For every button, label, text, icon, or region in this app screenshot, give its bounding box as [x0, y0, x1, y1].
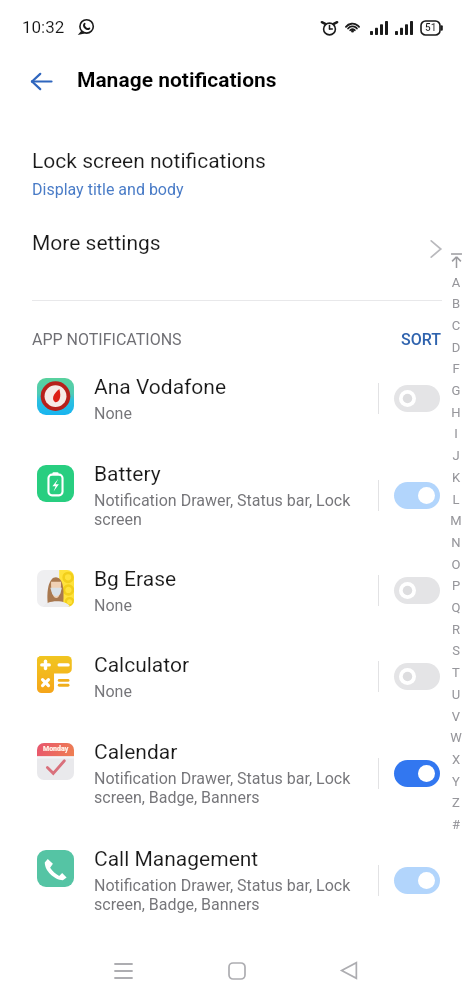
- staticText: Z: [444, 795, 468, 810]
- button[interactable]: Toggle notifications: [394, 760, 440, 787]
- staticText: Bg Erase: [94, 567, 177, 592]
- staticText: N: [444, 535, 468, 550]
- staticText: O: [444, 557, 468, 572]
- staticText: None: [94, 596, 132, 615]
- staticText: None: [94, 404, 132, 423]
- staticText: H: [444, 405, 468, 420]
- staticText: U: [444, 687, 468, 702]
- button[interactable]: Back: [320, 942, 377, 999]
- staticText: A: [444, 275, 468, 290]
- staticText: screen: [94, 510, 142, 529]
- staticText: G: [444, 383, 468, 398]
- staticText: APP NOTIFICATIONS: [32, 330, 182, 349]
- button[interactable]: Toggle notifications: [394, 663, 440, 690]
- button[interactable]: Alphabet index: [445, 250, 469, 840]
- staticText: 51: [425, 22, 437, 34]
- staticText: J: [444, 448, 468, 463]
- button[interactable]: Ana Vodafone: [0, 366, 473, 432]
- button[interactable]: Bg Erase: [0, 558, 473, 624]
- button[interactable]: Monday: [0, 731, 473, 817]
- staticText: screen, Badge, Banners: [94, 788, 260, 807]
- button[interactable]: Calculator: [0, 644, 473, 710]
- staticText: Monday: [43, 745, 69, 753]
- staticText: Lock screen notifications: [32, 149, 266, 174]
- button[interactable]: Back: [21, 61, 61, 101]
- staticText: T: [444, 665, 468, 680]
- staticText: V: [444, 709, 468, 724]
- staticText: W: [444, 730, 468, 745]
- staticText: K: [444, 470, 468, 485]
- staticText: Notification Drawer, Status bar, Lock: [94, 876, 351, 895]
- staticText: D: [444, 340, 468, 355]
- staticText: Calendar: [94, 740, 178, 765]
- button[interactable]: Lock screen notifications: [0, 145, 473, 207]
- staticText: Display title and body: [32, 180, 184, 199]
- staticText: C: [444, 318, 468, 333]
- button[interactable]: Toggle notifications: [394, 482, 440, 509]
- staticText: P: [444, 578, 468, 593]
- staticText: Call Management: [94, 847, 259, 872]
- button[interactable]: Call Management: [0, 838, 473, 924]
- button[interactable]: More settings: [0, 221, 473, 266]
- button[interactable]: Toggle notifications: [394, 867, 440, 894]
- button[interactable]: Recent apps: [95, 942, 152, 999]
- staticText: None: [94, 682, 132, 701]
- staticText: Notification Drawer, Status bar, Lock: [94, 491, 351, 510]
- staticText: Battery: [94, 462, 161, 487]
- staticText: I: [444, 426, 468, 441]
- staticText: L: [444, 492, 468, 507]
- staticText: F: [444, 361, 468, 376]
- staticText: More settings: [32, 231, 161, 256]
- staticText: M: [444, 513, 468, 528]
- staticText: screen, Badge, Banners: [94, 895, 260, 914]
- staticText: 10:32: [22, 17, 65, 37]
- staticText: Manage notifications: [77, 68, 277, 93]
- staticText: SORT: [401, 330, 441, 349]
- staticText: Q: [444, 600, 468, 615]
- staticText: Y: [444, 774, 468, 789]
- staticText: #: [444, 817, 468, 832]
- button[interactable]: Home: [208, 942, 265, 999]
- button[interactable]: Toggle notifications: [394, 577, 440, 604]
- staticText: Notification Drawer, Status bar, Lock: [94, 769, 351, 788]
- button[interactable]: Battery: [0, 453, 473, 539]
- button[interactable]: SORT: [395, 326, 447, 353]
- staticText: B: [444, 296, 468, 311]
- staticText: Calculator: [94, 653, 190, 678]
- button[interactable]: Toggle notifications: [394, 385, 440, 412]
- staticText: X: [444, 752, 468, 767]
- staticText: Ana Vodafone: [94, 375, 227, 400]
- staticText: R: [444, 622, 468, 637]
- staticText: S: [444, 643, 468, 658]
